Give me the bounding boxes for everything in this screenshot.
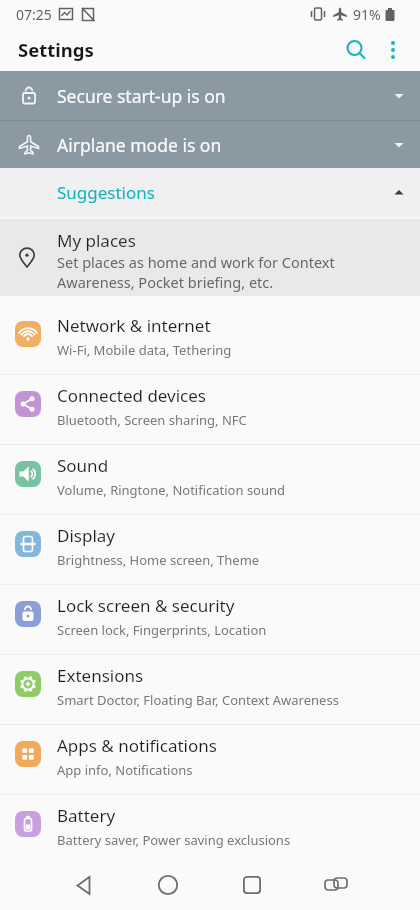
staticText: Apps & notifications [57,734,217,757]
button[interactable]: Connected devices [0,375,420,445]
staticText: Suggestions [57,181,155,204]
button[interactable]: Network & internet [0,305,420,375]
button[interactable] [336,30,376,70]
button[interactable]: Suggestions [0,168,420,217]
button[interactable]: Airplane mode is on [0,121,420,168]
button[interactable]: Display [0,515,420,585]
staticText: Display [57,524,115,547]
staticText: Connected devices [57,384,207,407]
button[interactable]: Lock screen & security [0,585,420,655]
staticText: My places [57,229,136,252]
staticText: Brightness, Home screen, Theme [57,551,260,569]
button[interactable]: Battery [0,795,420,865]
staticText: Bluetooth, Screen sharing, NFC [57,411,247,429]
staticText: Network & internet [57,314,211,337]
staticText: Battery [57,804,116,827]
button[interactable]: Secure start-up is on [0,71,420,120]
staticText: Wi-Fi, Mobile data, Tethering [57,341,232,359]
button[interactable] [144,861,192,909]
staticText: Airplane mode is on [57,133,222,157]
staticText: Screen lock, Fingerprints, Location [57,621,267,639]
staticText: 07:25 [16,5,52,24]
staticText: Sound [57,454,109,477]
staticText: Smart Doctor, Floating Bar, Context Awar… [57,691,339,709]
staticText: Battery saver, Power saving exclusions [57,831,291,849]
staticText: Set places as home and work for Context … [57,252,335,293]
staticText: Extensions [57,664,144,687]
staticText: Volume, Ringtone, Notification sound [57,481,286,499]
button[interactable]: Apps & notifications [0,725,420,795]
button[interactable]: Sound [0,445,420,515]
button[interactable] [228,861,276,909]
staticText: App info, Notifications [57,761,193,779]
staticText: Lock screen & security [57,594,235,617]
button[interactable] [312,861,360,909]
button[interactable]: My places [0,219,420,296]
staticText: Settings [18,37,94,62]
button[interactable] [376,33,410,67]
button[interactable] [60,861,108,909]
staticText: 91% [353,5,381,24]
button[interactable]: Extensions [0,655,420,725]
staticText: Secure start-up is on [57,84,226,108]
